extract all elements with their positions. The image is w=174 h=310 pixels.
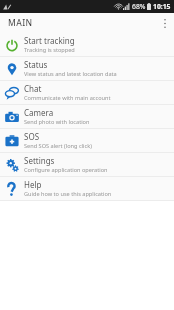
staticText: Status <box>24 59 48 70</box>
button[interactable]: Help <box>0 177 174 200</box>
staticText: View status and latest location data <box>24 70 117 78</box>
staticText: Start tracking <box>24 35 75 46</box>
staticText: 68% <box>132 2 146 11</box>
staticText: Send SOS alert (long click) <box>24 142 92 150</box>
staticText: Camera <box>24 107 54 118</box>
button[interactable]: Chat <box>0 81 174 104</box>
staticText: 10:15 <box>153 2 171 11</box>
staticText: SOS <box>24 131 40 142</box>
button[interactable]: Settings <box>0 153 174 176</box>
button[interactable]: SOS <box>0 129 174 152</box>
staticText: Help <box>24 179 42 190</box>
button[interactable]: More options <box>156 13 174 33</box>
button[interactable]: Status <box>0 57 174 80</box>
button[interactable]: Start tracking <box>0 33 174 56</box>
staticText: MAIN <box>8 17 33 29</box>
staticText: Send photo with location <box>24 118 90 126</box>
button[interactable]: Camera <box>0 105 174 128</box>
staticText: Configure application operation <box>24 166 108 174</box>
staticText: Tracking is stopped <box>24 46 75 54</box>
staticText: Chat <box>24 83 42 94</box>
staticText: Settings <box>24 155 55 166</box>
staticText: Guide how to use this application <box>24 190 112 198</box>
staticText: Communicate with main account <box>24 94 111 102</box>
